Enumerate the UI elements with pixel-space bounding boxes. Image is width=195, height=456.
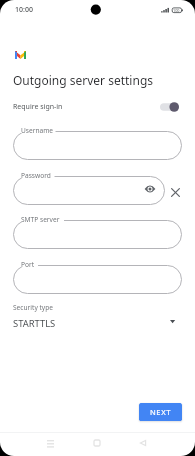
staticText: Port bbox=[21, 260, 35, 269]
staticText: 100 bbox=[173, 8, 180, 13]
staticText: NEXT bbox=[150, 407, 172, 417]
button[interactable]: Require sign-in toggle bbox=[160, 100, 179, 114]
button[interactable]: Clear bbox=[169, 186, 182, 199]
button[interactable]: Port bbox=[13, 265, 182, 294]
button[interactable]: Password bbox=[13, 176, 165, 205]
button[interactable]: Require sign-in bbox=[0, 97, 195, 116]
staticText: STARTTLS bbox=[13, 317, 56, 330]
button[interactable]: Show password bbox=[143, 182, 157, 196]
button[interactable]: Home bbox=[86, 434, 108, 452]
button[interactable]: SMTP server bbox=[13, 220, 182, 249]
staticText: Outgoing server settings bbox=[13, 72, 154, 88]
button[interactable]: Username bbox=[13, 131, 182, 160]
button[interactable]: Recent apps bbox=[39, 434, 61, 452]
staticText: Password bbox=[21, 171, 51, 180]
button[interactable]: Security type bbox=[0, 300, 195, 334]
button[interactable]: Back bbox=[132, 434, 154, 452]
button[interactable]: NEXT bbox=[139, 403, 182, 421]
staticText: Security type bbox=[13, 303, 53, 312]
staticText: 10:00 bbox=[15, 5, 33, 15]
staticText: Username bbox=[21, 126, 54, 135]
staticText: SMTP server bbox=[21, 215, 60, 224]
staticText: Require sign-in bbox=[13, 102, 63, 112]
